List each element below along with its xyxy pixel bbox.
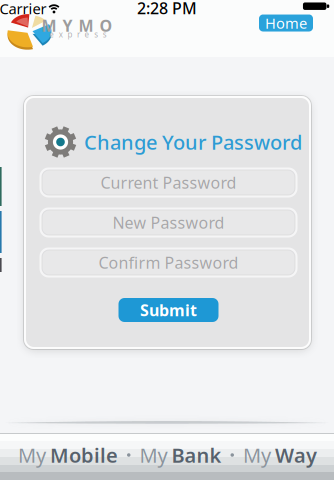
staticText: e [85,29,90,40]
button[interactable]: My [18,442,118,468]
staticText: Home [265,13,307,33]
button[interactable]: My [243,442,317,468]
button[interactable]: New Password [39,207,297,237]
staticText: Mobile [50,442,118,468]
staticText: Y [62,15,72,36]
staticText: Change Your Password [84,129,302,155]
button[interactable]: Current Password [39,167,297,197]
staticText: Way [275,442,317,468]
staticText: x [59,29,63,40]
staticText: My [139,442,167,468]
staticText: M [41,15,56,36]
button[interactable]: Home [259,14,313,31]
staticText: New Password [112,212,224,233]
button[interactable]: Submit [118,298,218,322]
staticText: O [99,15,112,36]
staticText: Current Password [100,172,236,193]
staticText: p [67,29,72,40]
staticText: s [94,29,98,40]
staticText: Carrier [0,0,46,18]
button[interactable]: My [139,442,221,468]
staticText: Confirm Password [98,252,238,273]
staticText: Submit [140,299,197,321]
button[interactable]: Confirm Password [39,247,297,277]
staticText: r [77,29,80,40]
staticText: s [103,29,107,40]
staticText: 2:28 PM [137,0,197,19]
staticText: M [78,15,93,36]
staticText: Bank [171,442,221,468]
staticText: My [18,442,46,468]
staticText: My [243,442,271,468]
staticText: e [49,29,54,40]
